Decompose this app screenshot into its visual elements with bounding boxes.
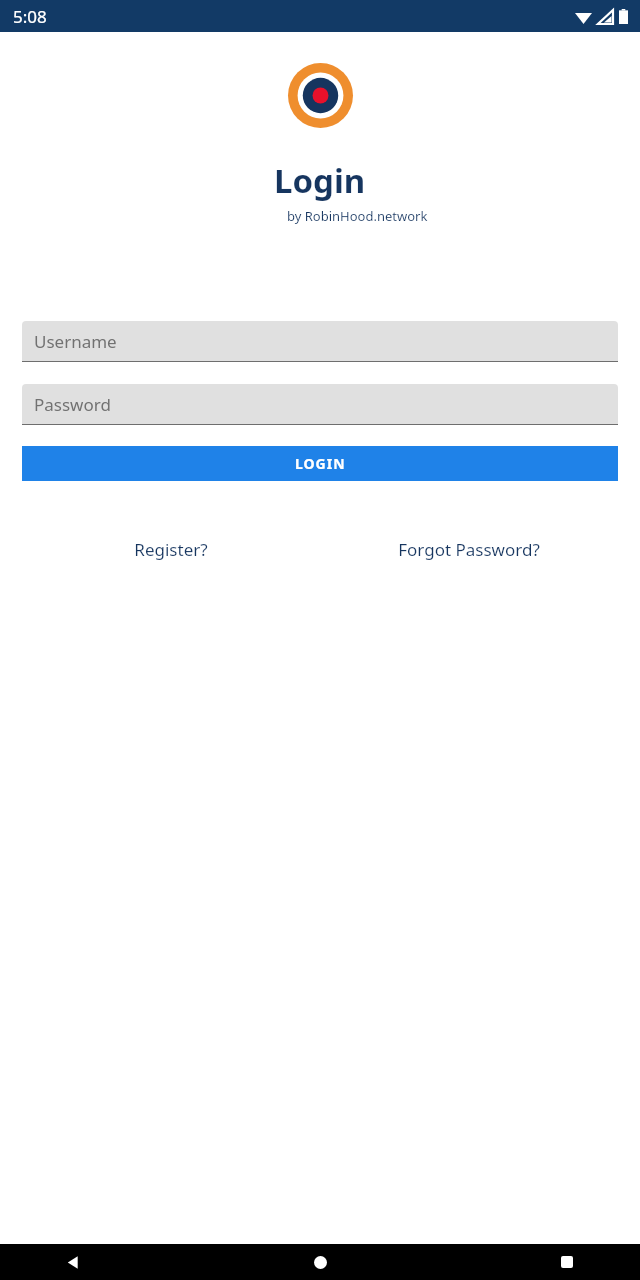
staticText: LOGIN bbox=[295, 454, 346, 473]
staticText: 5:08 bbox=[13, 5, 47, 28]
button[interactable]: Forgot Password? bbox=[320, 538, 618, 561]
button[interactable]: LOGIN bbox=[22, 446, 618, 481]
staticText: Forgot Password? bbox=[398, 538, 540, 561]
button[interactable]: Password bbox=[22, 384, 618, 425]
button[interactable]: Recent apps bbox=[551, 1246, 583, 1278]
staticText: Password bbox=[34, 393, 111, 416]
button[interactable]: Username bbox=[22, 321, 618, 362]
staticText: Username bbox=[34, 330, 117, 353]
staticText: Login bbox=[274, 158, 366, 203]
button[interactable]: Register? bbox=[22, 538, 320, 561]
staticText: by RobinHood.network bbox=[287, 207, 428, 225]
button[interactable]: Back bbox=[57, 1246, 89, 1278]
button[interactable]: Home bbox=[304, 1246, 336, 1278]
staticText: Register? bbox=[134, 538, 208, 561]
